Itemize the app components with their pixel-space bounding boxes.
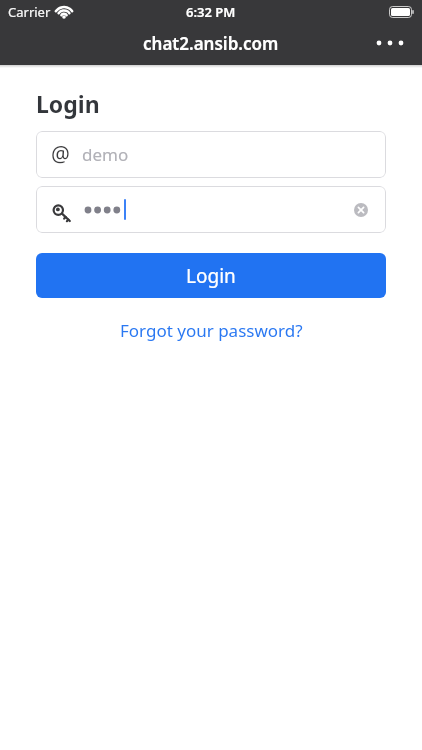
staticText: @ <box>51 140 70 169</box>
button[interactable] <box>36 186 386 233</box>
staticText: Forgot your password? <box>120 319 303 342</box>
staticText: Login <box>186 263 236 289</box>
staticText: Login <box>36 88 100 119</box>
staticText: demo <box>82 143 129 166</box>
button[interactable]: @ <box>36 131 386 178</box>
button[interactable] <box>373 28 407 58</box>
button[interactable]: Login <box>36 253 386 298</box>
staticText: 6:32 PM <box>186 3 236 21</box>
staticText: chat2.ansib.com <box>143 32 279 55</box>
button[interactable]: Forgot your password? <box>120 319 303 342</box>
staticText: Carrier <box>8 3 51 21</box>
button[interactable] <box>346 195 376 225</box>
